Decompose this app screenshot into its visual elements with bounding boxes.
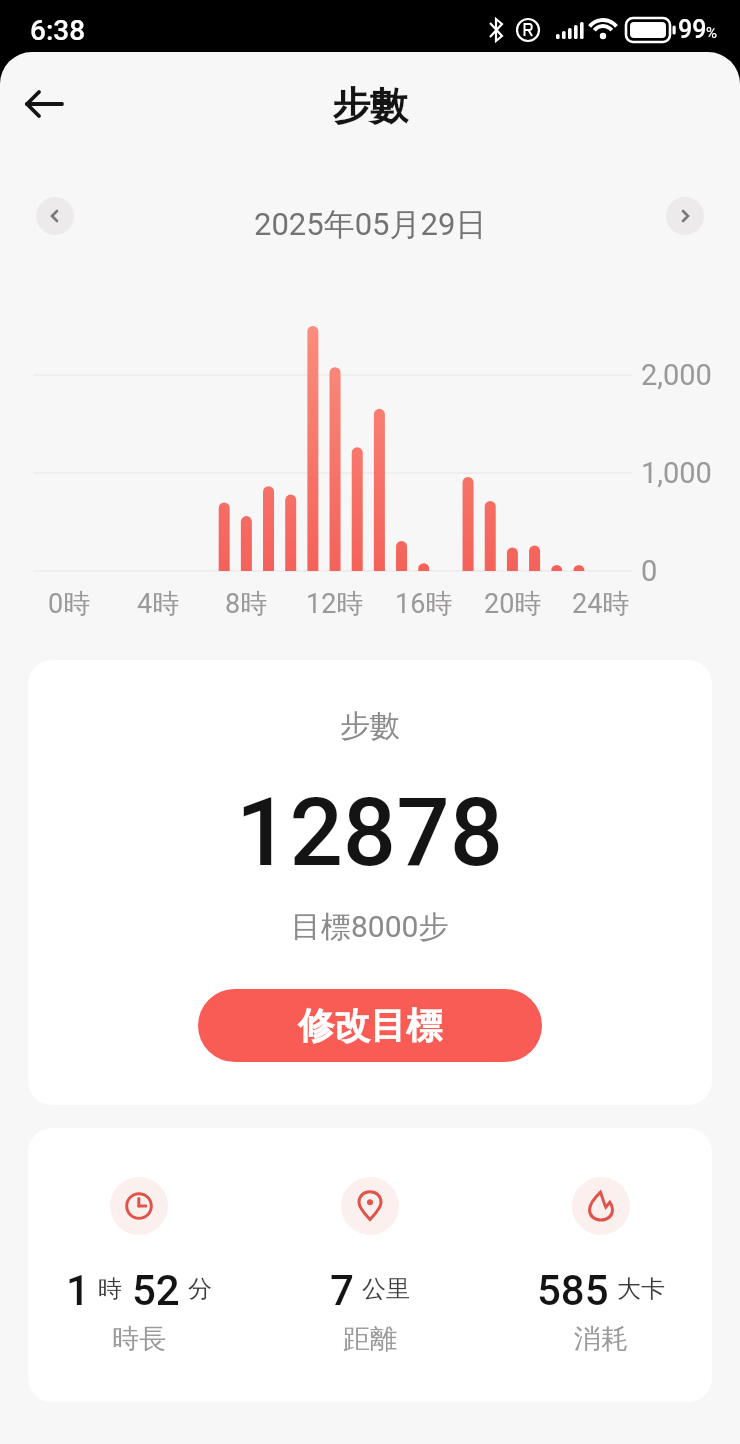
- staticText: 1: [66, 1266, 90, 1315]
- staticText: 24時: [572, 587, 630, 621]
- staticText: 8時: [225, 587, 268, 621]
- staticText: 公里: [362, 1274, 410, 1304]
- staticText: 4時: [137, 587, 180, 621]
- staticText: 12時: [306, 587, 364, 621]
- staticText: 0: [641, 554, 658, 588]
- staticText: 12878: [236, 778, 504, 888]
- button[interactable]: [36, 197, 74, 235]
- staticText: 目標8000步: [291, 908, 449, 946]
- staticText: 步數: [332, 82, 408, 130]
- staticText: 2025年05月29日: [254, 205, 487, 244]
- button[interactable]: [666, 197, 704, 235]
- button[interactable]: [17, 76, 73, 132]
- staticText: 大卡: [617, 1274, 665, 1304]
- staticText: 2,000: [641, 358, 712, 392]
- staticText: 1,000: [641, 456, 712, 490]
- staticText: 距離: [343, 1322, 397, 1356]
- staticText: 時: [98, 1274, 122, 1304]
- staticText: 6:38: [30, 14, 86, 47]
- staticText: 步數: [340, 707, 400, 745]
- staticText: 時長: [112, 1322, 166, 1356]
- staticText: 16時: [395, 587, 453, 621]
- staticText: 7: [330, 1266, 354, 1315]
- staticText: %: [706, 24, 717, 42]
- staticText: 消耗: [574, 1322, 628, 1356]
- staticText: 20時: [484, 587, 542, 621]
- staticText: 52: [132, 1266, 180, 1315]
- staticText: 0時: [48, 587, 91, 621]
- staticText: 修改目標: [298, 1003, 442, 1048]
- staticText: 分: [188, 1274, 212, 1304]
- staticText: 99: [678, 15, 707, 44]
- button[interactable]: 修改目標: [198, 989, 542, 1062]
- staticText: 585: [537, 1266, 609, 1315]
